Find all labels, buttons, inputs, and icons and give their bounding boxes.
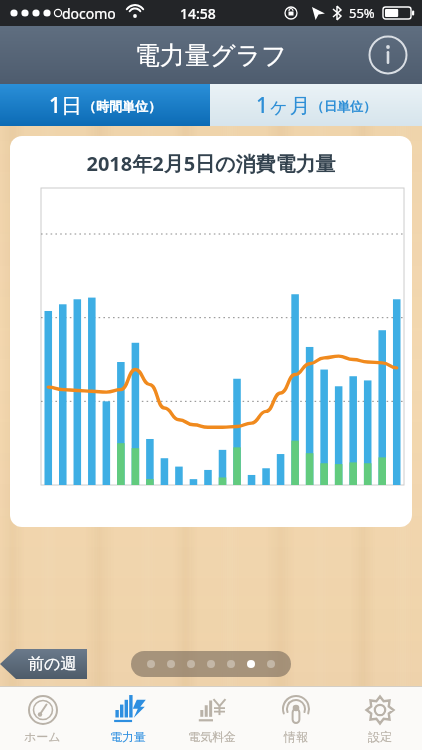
staticText: ホーム bbox=[24, 729, 61, 744]
staticText: 電気料金 bbox=[188, 729, 236, 744]
button[interactable]: 電力量 bbox=[85, 687, 170, 750]
button[interactable]: 前の週 bbox=[0, 648, 92, 680]
staticText: 1ヶ月 bbox=[256, 91, 311, 120]
staticText: 情報 bbox=[284, 729, 308, 744]
staticText: （日単位） bbox=[311, 98, 376, 114]
staticText: 電力量 bbox=[110, 729, 146, 744]
button[interactable]: ホーム bbox=[0, 687, 85, 750]
staticText: 前の週 bbox=[28, 654, 77, 674]
staticText: 設定 bbox=[368, 729, 392, 744]
button[interactable]: 1日 bbox=[0, 84, 210, 126]
button[interactable]: Info bbox=[368, 35, 408, 75]
staticText: 電力量グラフ bbox=[135, 40, 287, 71]
staticText: docomo bbox=[62, 4, 116, 23]
button[interactable]: 設定 bbox=[338, 687, 422, 750]
button[interactable]: 電気料金 bbox=[170, 687, 254, 750]
staticText: 1日 bbox=[49, 91, 83, 120]
staticText: （時間単位） bbox=[83, 98, 161, 114]
staticText: 2018年2月5日の消費電力量 bbox=[86, 150, 336, 177]
button[interactable]: 情報 bbox=[254, 687, 338, 750]
staticText: 55% bbox=[349, 4, 375, 22]
staticText: 14:58 bbox=[180, 4, 216, 23]
button[interactable]: 1ヶ月 bbox=[210, 84, 422, 126]
